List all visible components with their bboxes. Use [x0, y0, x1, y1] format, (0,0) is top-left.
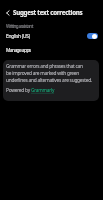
staticText: Powered by Grammarly	[6, 87, 55, 94]
staticText: English (US)	[6, 33, 87, 40]
staticText: Manage apps	[6, 47, 31, 54]
button[interactable]: English (US)	[0, 30, 103, 42]
staticText: Suggest text corrections	[13, 8, 83, 16]
button[interactable]: Navigate up	[1, 6, 14, 19]
button[interactable]: Manage apps	[0, 44, 103, 56]
staticText: Grammar errors and phrases that can be i…	[6, 63, 93, 84]
staticText: Writing assistant	[6, 23, 33, 29]
